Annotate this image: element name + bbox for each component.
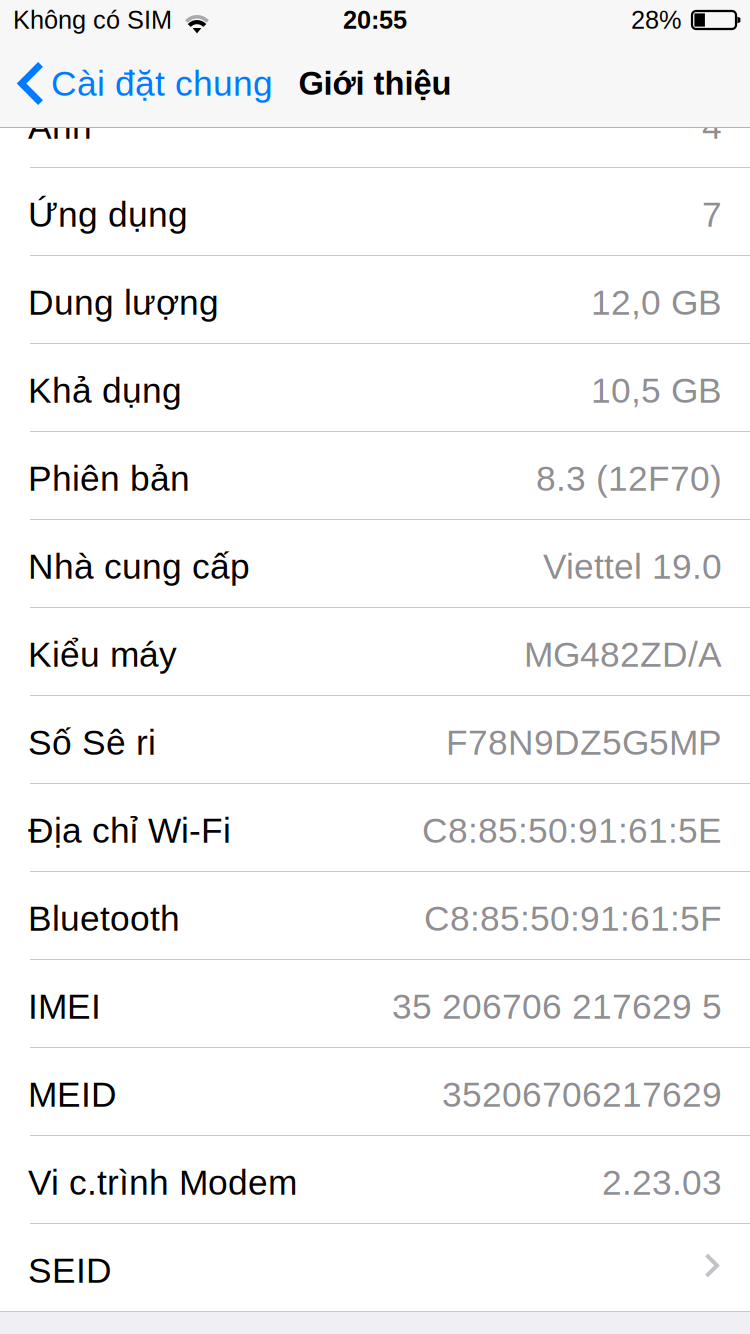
staticText: Cài đặt chung bbox=[51, 64, 273, 103]
staticText: 12,0 GB bbox=[591, 283, 722, 322]
button[interactable]: Khả dụng bbox=[0, 344, 750, 432]
staticText: MG482ZD/A bbox=[524, 635, 722, 674]
button[interactable]: Vi c.trình Modem bbox=[0, 1136, 750, 1224]
button[interactable]: Bluetooth bbox=[0, 872, 750, 960]
staticText: C8:85:50:91:61:5E bbox=[422, 811, 722, 850]
staticText: 20:55 bbox=[343, 6, 407, 34]
button[interactable]: Ứng dụng bbox=[0, 168, 750, 256]
staticText: SEID bbox=[28, 1251, 112, 1290]
staticText: MEID bbox=[28, 1075, 117, 1114]
button[interactable]: IMEI bbox=[0, 960, 750, 1048]
button[interactable]: SEID bbox=[0, 1224, 750, 1312]
staticText: 2.23.03 bbox=[602, 1163, 722, 1202]
button[interactable]: Kiểu máy bbox=[0, 608, 750, 696]
button[interactable]: Ảnh bbox=[0, 80, 750, 168]
staticText: 10,5 GB bbox=[591, 371, 722, 410]
staticText: Viettel 19.0 bbox=[543, 547, 722, 586]
staticText: Phiên bản bbox=[28, 459, 190, 498]
staticText: Khả dụng bbox=[28, 371, 182, 410]
button[interactable]: Phiên bản bbox=[0, 432, 750, 520]
staticText: C8:85:50:91:61:5F bbox=[424, 899, 722, 938]
button[interactable]: Nhà cung cấp bbox=[0, 520, 750, 608]
staticText: Bluetooth bbox=[28, 899, 180, 938]
button[interactable]: Địa chỉ Wi-Fi bbox=[0, 784, 750, 872]
staticText: IMEI bbox=[28, 987, 101, 1026]
staticText: Địa chỉ Wi-Fi bbox=[28, 811, 231, 850]
staticText: Giới thiệu bbox=[298, 65, 451, 102]
staticText: Kiểu máy bbox=[28, 635, 177, 674]
button[interactable]: MEID bbox=[0, 1048, 750, 1136]
staticText: 4 bbox=[702, 107, 722, 146]
button[interactable]: Cài đặt chung bbox=[0, 40, 283, 127]
staticText: 7 bbox=[702, 195, 722, 234]
button[interactable]: Dung lượng bbox=[0, 256, 750, 344]
staticText: Vi c.trình Modem bbox=[28, 1163, 297, 1202]
staticText: Số Sê ri bbox=[28, 723, 156, 762]
staticText: Dung lượng bbox=[28, 283, 219, 322]
staticText: 8.3 (12F70) bbox=[536, 459, 722, 498]
staticText: 35 206706 217629 5 bbox=[392, 987, 722, 1026]
staticText: Ứng dụng bbox=[28, 195, 188, 234]
button[interactable]: Số Sê ri bbox=[0, 696, 750, 784]
staticText: F78N9DZ5G5MP bbox=[446, 723, 722, 762]
staticText: 35206706217629 bbox=[442, 1075, 722, 1114]
staticText: Nhà cung cấp bbox=[28, 547, 250, 586]
staticText: Ảnh bbox=[28, 107, 92, 146]
staticText: 28% bbox=[631, 6, 682, 34]
staticText: Không có SIM bbox=[13, 6, 172, 34]
